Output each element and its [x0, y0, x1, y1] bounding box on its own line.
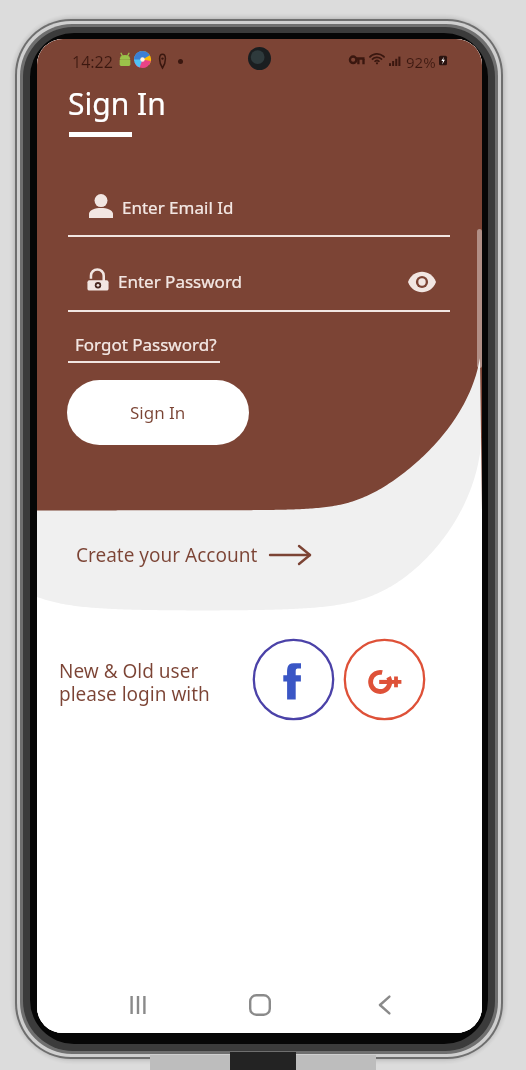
button[interactable]: Forgot Password?	[68, 333, 220, 367]
staticText: Enter Email Id	[122, 196, 234, 219]
staticText: 92%	[406, 52, 436, 72]
button[interactable]: Show password	[403, 263, 441, 301]
staticText: Sign In	[130, 401, 186, 424]
staticText: New & Old user please login with	[59, 658, 210, 707]
button[interactable]: Recent apps	[114, 981, 162, 1029]
button[interactable]: Back	[361, 981, 409, 1029]
staticText: Enter Password	[118, 270, 243, 293]
staticText: Sign In	[68, 83, 166, 124]
staticText: 14:22	[72, 51, 113, 73]
button[interactable]: Sign in with Google	[344, 639, 425, 720]
staticText: Create your Account	[76, 542, 258, 568]
staticText: Forgot Password?	[75, 333, 217, 356]
button[interactable]: Sign In	[67, 380, 249, 445]
button[interactable]: Home	[236, 981, 284, 1029]
button[interactable]: Sign in with Facebook	[253, 639, 334, 720]
button[interactable]: Create your Account	[70, 537, 311, 573]
